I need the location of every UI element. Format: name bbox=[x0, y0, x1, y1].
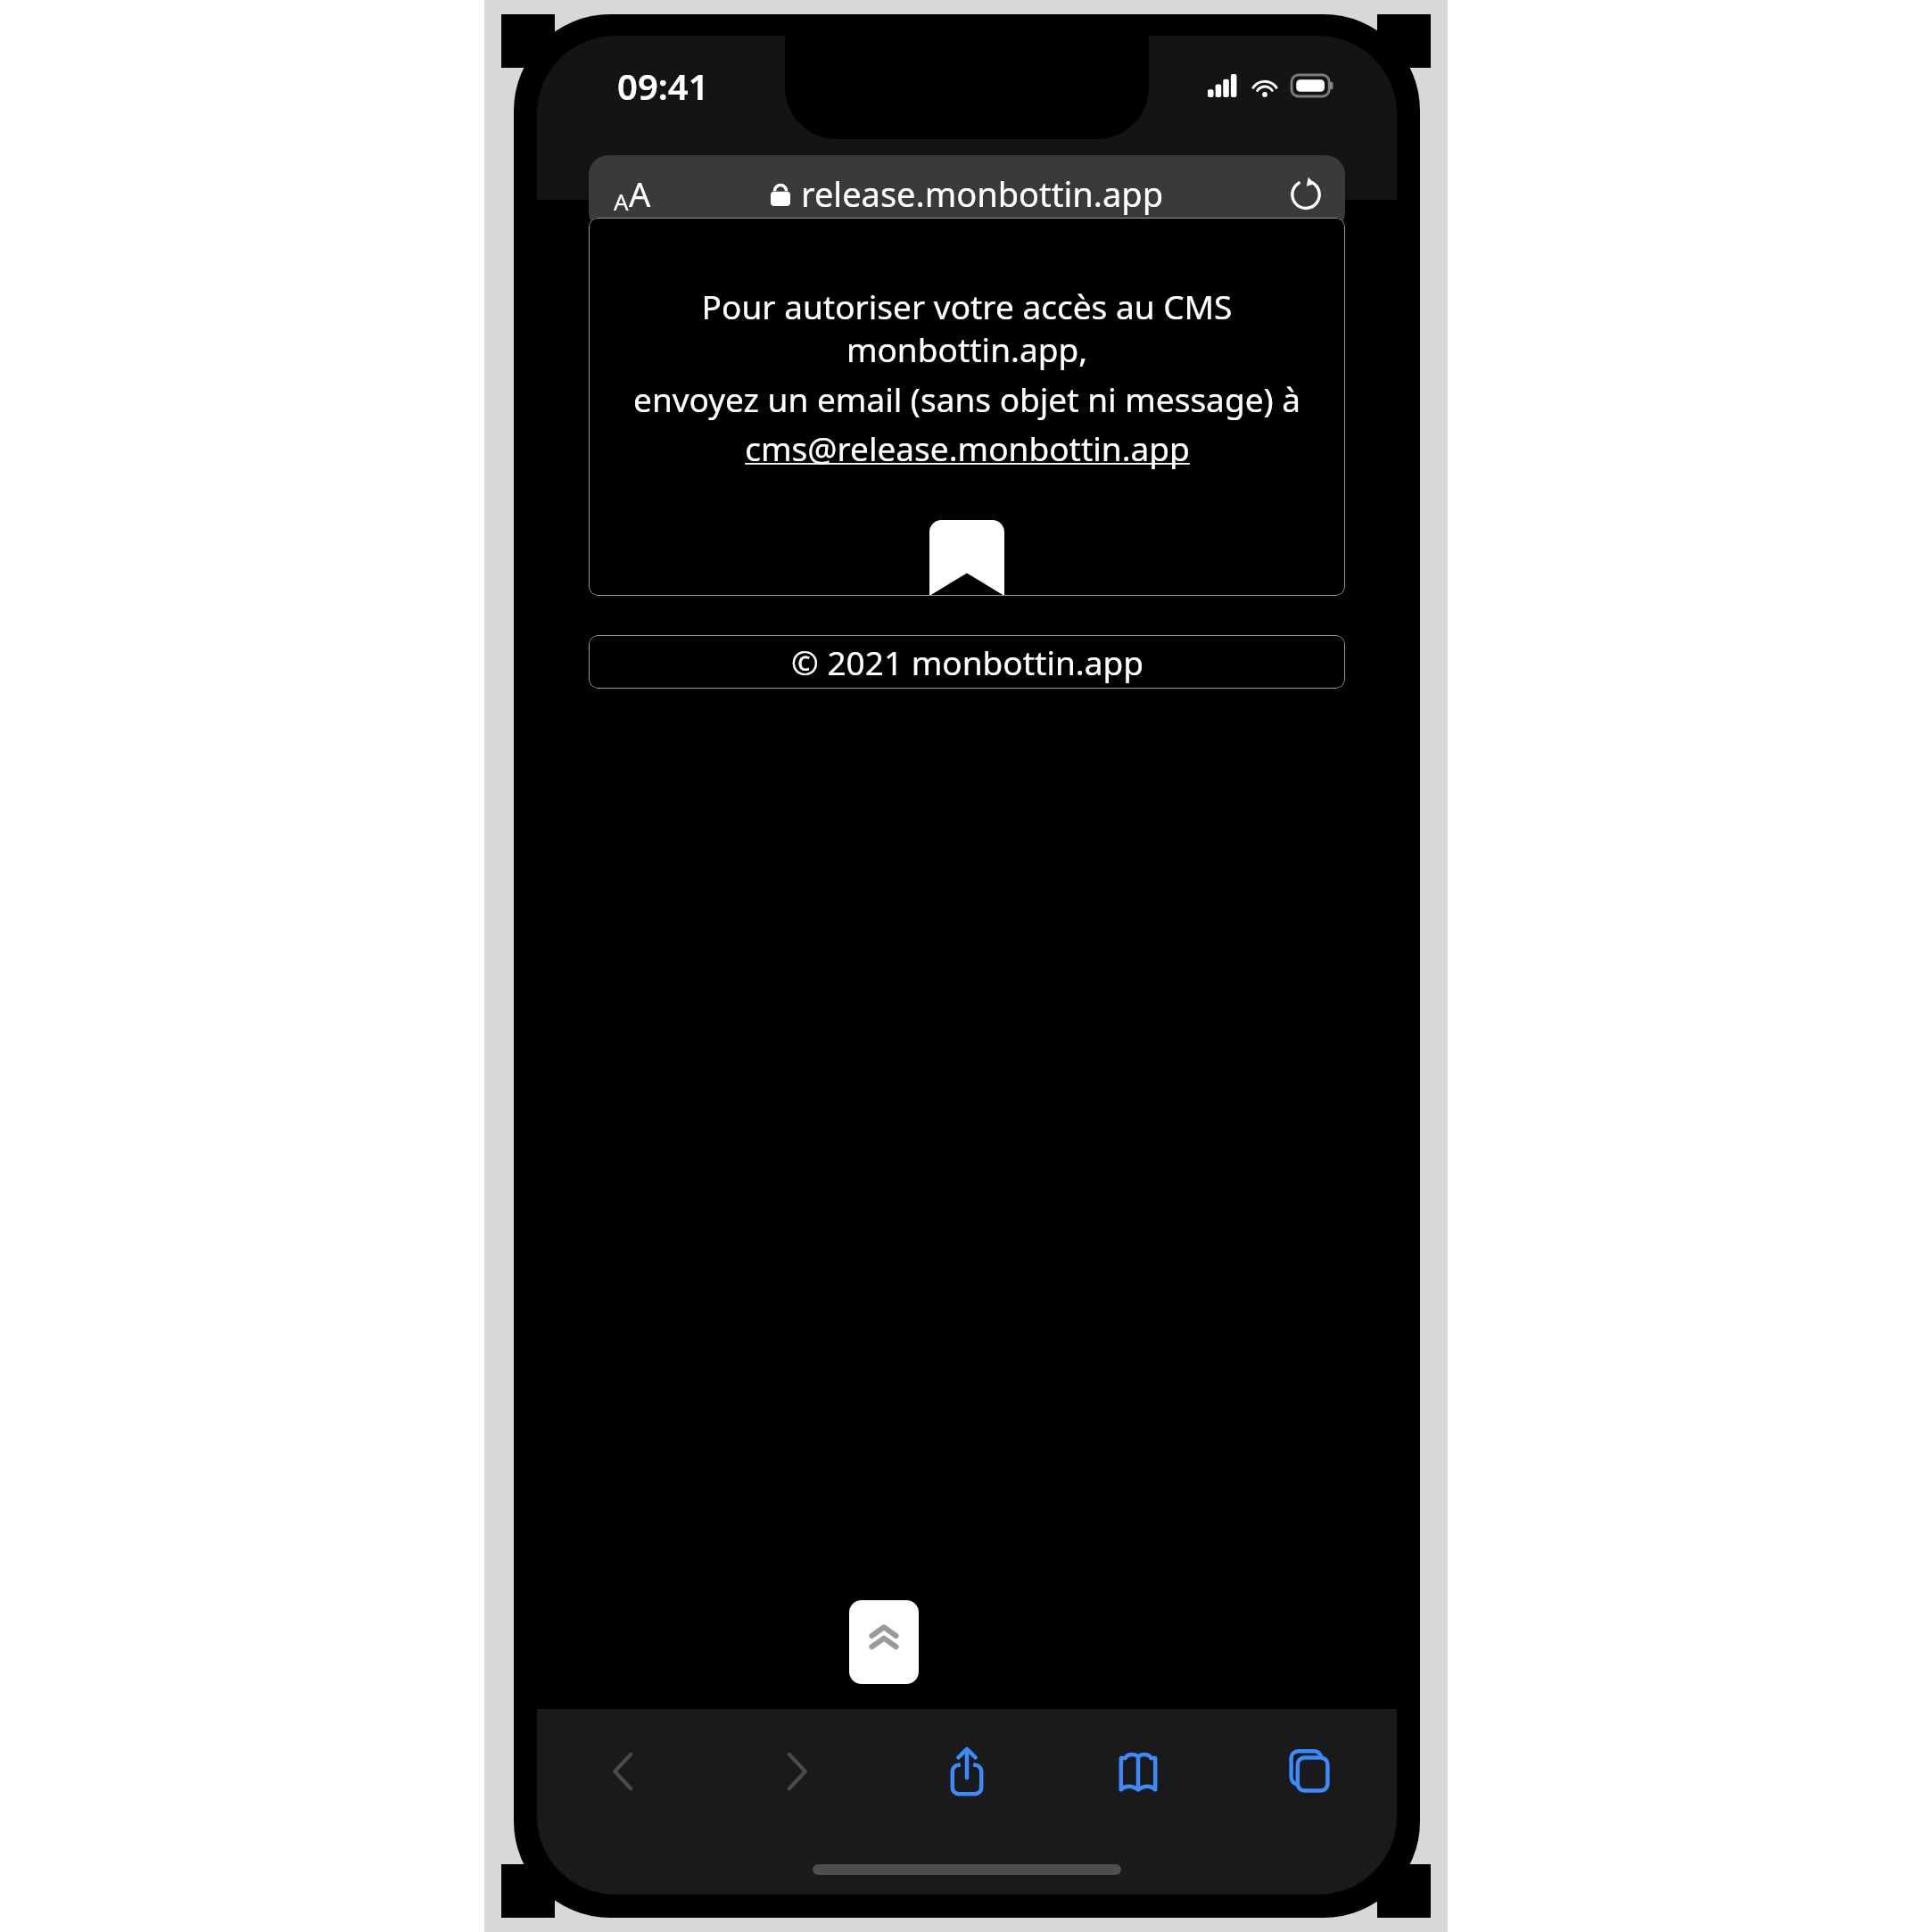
staticText: 09:41 bbox=[617, 62, 709, 110]
button[interactable]: Bookmarks bbox=[1085, 1718, 1192, 1825]
staticText: A bbox=[629, 170, 651, 217]
staticText: © 2021 monbottin.app bbox=[791, 640, 1144, 684]
button[interactable]: Text size bbox=[608, 165, 656, 222]
staticText: release.monbottin.app bbox=[801, 170, 1164, 217]
button[interactable]: © 2021 monbottin.app bbox=[589, 635, 1345, 689]
staticText: Pour autoriser votre accès au CMS monbot… bbox=[589, 284, 1345, 372]
button[interactable]: Back bbox=[571, 1718, 678, 1825]
button[interactable]: Forward bbox=[742, 1718, 849, 1825]
button[interactable]: Tabs bbox=[1256, 1718, 1363, 1825]
staticText: A bbox=[614, 186, 629, 217]
button[interactable]: Reload bbox=[1288, 176, 1324, 211]
staticText: cms@release.monbottin.app bbox=[745, 425, 1190, 470]
button[interactable]: cms@release.monbottin.app bbox=[745, 425, 1190, 470]
button[interactable]: Bookmark bbox=[929, 520, 1004, 596]
button[interactable]: Text size bbox=[589, 155, 1345, 232]
button[interactable]: Scroll to top bbox=[849, 1600, 919, 1684]
staticText: envoyez un email (sans objet ni message)… bbox=[633, 376, 1300, 421]
button[interactable]: Share bbox=[913, 1718, 1020, 1825]
